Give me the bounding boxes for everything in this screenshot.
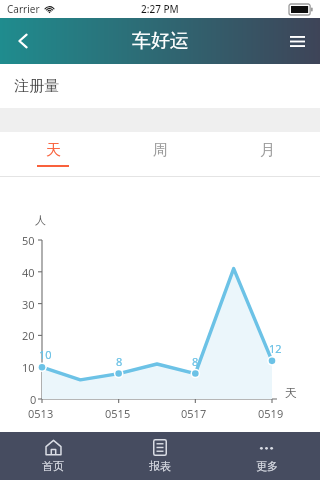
staticText: 30 [22,297,35,312]
staticText: 更多 [256,459,278,473]
button[interactable]: 月 [213,132,320,176]
staticText: 2:27 PM [141,2,179,16]
staticText: 报表 [149,459,171,473]
staticText: 注册量 [14,77,59,96]
staticText: 12 [269,341,282,356]
staticText: 20 [22,328,35,343]
staticText: 50 [22,233,35,248]
staticText: 10 [39,347,52,362]
staticText: 月 [260,141,275,160]
staticText: 周 [153,141,168,160]
button[interactable]: 天 [0,132,106,176]
button[interactable]: 周 [106,132,213,176]
staticText: 10 [22,360,35,375]
staticText: 8 [116,354,123,369]
staticText: Carrier [7,2,40,16]
staticText: 8 [192,354,199,369]
button[interactable]: 首页 [0,432,106,480]
staticText: 40 [22,265,35,280]
staticText: 天 [285,385,297,400]
button[interactable]: 更多 [213,432,320,480]
staticText: 0519 [258,406,284,421]
button[interactable]: Menu [274,18,320,64]
staticText: 0 [30,392,37,407]
staticText: 车好运 [132,29,189,53]
button[interactable]: 报表 [106,432,213,480]
staticText: 人 [35,213,46,227]
button[interactable]: Back [0,18,46,64]
staticText: 首页 [42,459,64,473]
staticText: 天 [46,141,61,160]
staticText: 0513 [28,406,54,421]
staticText: 0517 [181,406,207,421]
staticText: 0515 [105,406,131,421]
